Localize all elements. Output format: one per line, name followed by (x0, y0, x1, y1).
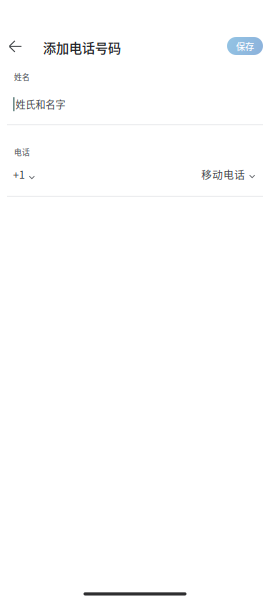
button[interactable]: Back (3, 34, 27, 58)
staticText: 姓名 (14, 71, 30, 82)
staticText: 姓氏和名字 (16, 97, 66, 111)
staticText: 添加电话号码 (43, 37, 121, 56)
staticText: 保存 (236, 39, 254, 53)
staticText: 电话 (14, 146, 30, 157)
button[interactable]: +1 (13, 166, 35, 182)
button[interactable]: 移动电话 (201, 167, 255, 182)
staticText: +1 (13, 166, 25, 182)
button[interactable]: 姓氏和名字 (0, 96, 270, 112)
button[interactable]: 保存 (227, 37, 263, 55)
staticText: 移动电话 (201, 167, 245, 182)
